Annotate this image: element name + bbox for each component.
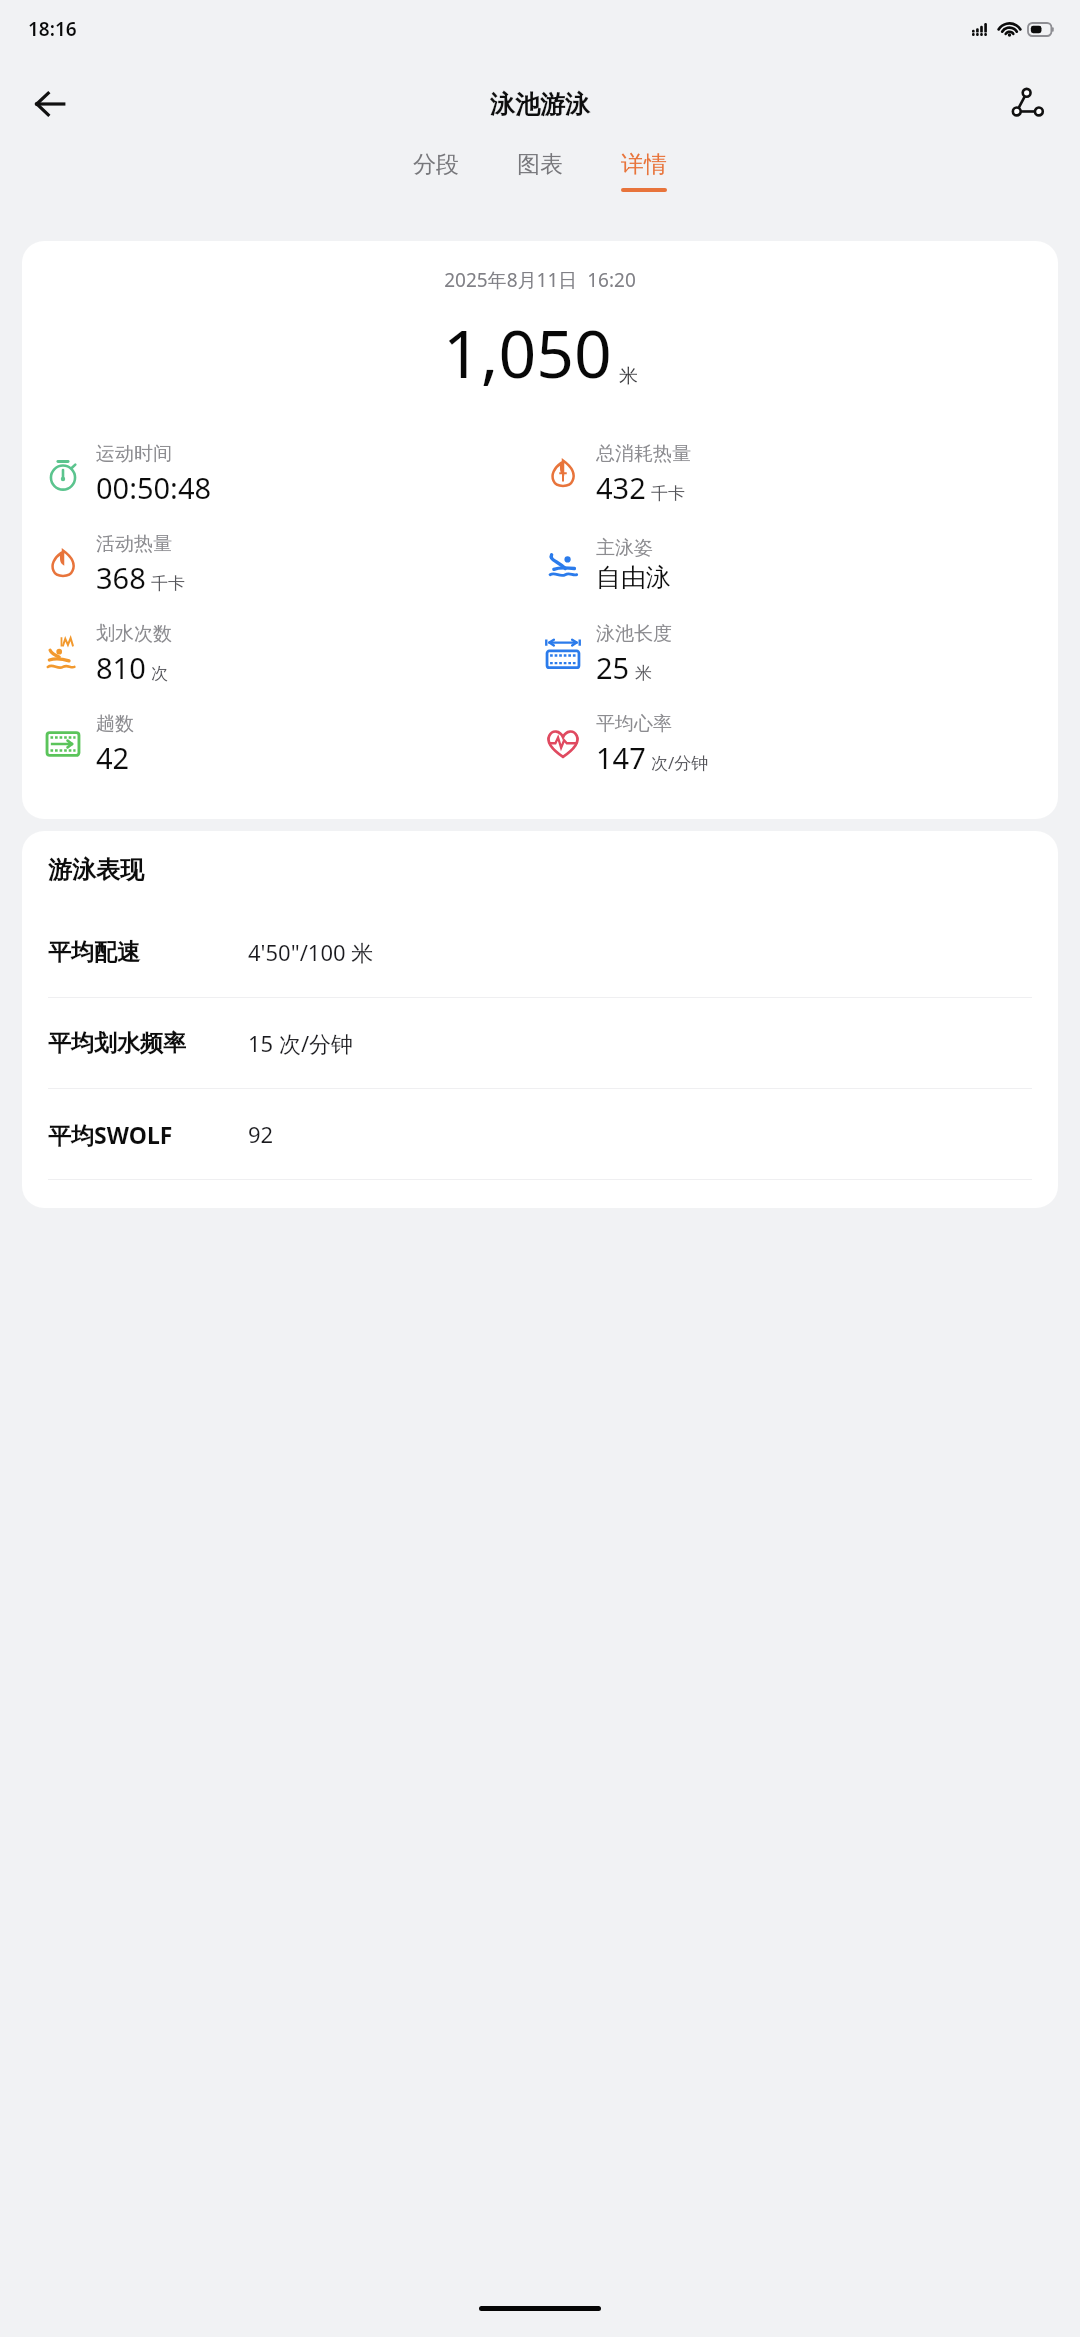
staticText: 图表	[517, 150, 563, 179]
staticText: 432	[596, 468, 646, 507]
staticText: 810	[96, 648, 146, 687]
button[interactable]: 详情	[615, 150, 673, 192]
staticText: 平均划水频率	[48, 1029, 248, 1058]
button[interactable]: 平均SWOLF	[22, 1089, 1058, 1179]
staticText: 平均心率	[596, 712, 672, 736]
staticText: 1,050	[443, 307, 612, 397]
staticText: 147	[596, 738, 646, 777]
staticText: 运动时间	[96, 442, 172, 466]
staticText: 泳池游泳	[490, 89, 590, 120]
button[interactable]: 平均配速	[22, 907, 1058, 997]
staticText: 千卡	[651, 483, 685, 504]
staticText: 次	[151, 663, 168, 684]
staticText: 划水次数	[96, 622, 172, 646]
button[interactable]: 活动热量	[40, 519, 185, 609]
staticText: 米	[619, 364, 638, 388]
staticText: 分段	[413, 150, 459, 179]
button[interactable]: 主泳姿	[540, 519, 671, 609]
button[interactable]: 平均划水频率	[22, 998, 1058, 1088]
staticText: 次/分钟	[651, 751, 709, 774]
button[interactable]: 分段	[407, 150, 465, 192]
button[interactable]: 总消耗热量	[540, 429, 691, 519]
staticText: 15 次/分钟	[248, 1028, 354, 1058]
staticText: 00:50:48	[96, 468, 212, 507]
staticText: 25	[596, 648, 630, 687]
staticText: 4'50"/100 米	[248, 937, 374, 967]
staticText: 368	[96, 558, 146, 597]
button[interactable]: 泳池长度	[540, 609, 672, 699]
button[interactable]: 平均心率	[540, 699, 709, 789]
staticText: 主泳姿	[596, 536, 653, 560]
staticText: 泳池长度	[596, 622, 672, 646]
button[interactable]: 图表	[511, 150, 569, 192]
button[interactable]: 趟数	[40, 699, 134, 789]
button[interactable]: Share	[1000, 76, 1056, 132]
staticText: 18:16	[28, 16, 77, 42]
staticText: 千卡	[151, 573, 185, 594]
button[interactable]: 运动时间	[40, 429, 212, 519]
staticText: 趟数	[96, 712, 134, 736]
staticText: 平均SWOLF	[48, 1119, 248, 1150]
staticText: 总消耗热量	[596, 442, 691, 466]
staticText: 自由泳	[596, 562, 671, 593]
staticText: 2025年8月11日 16:20	[22, 267, 1058, 293]
staticText: 92	[248, 1119, 274, 1149]
staticText: 活动热量	[96, 532, 172, 556]
button[interactable]: 划水次数	[40, 609, 172, 699]
staticText: 平均配速	[48, 938, 248, 967]
staticText: 游泳表现	[48, 855, 144, 885]
staticText: 详情	[621, 150, 667, 179]
staticText: 米	[635, 663, 652, 684]
button[interactable]: Back	[22, 76, 78, 132]
staticText: 42	[96, 738, 130, 777]
